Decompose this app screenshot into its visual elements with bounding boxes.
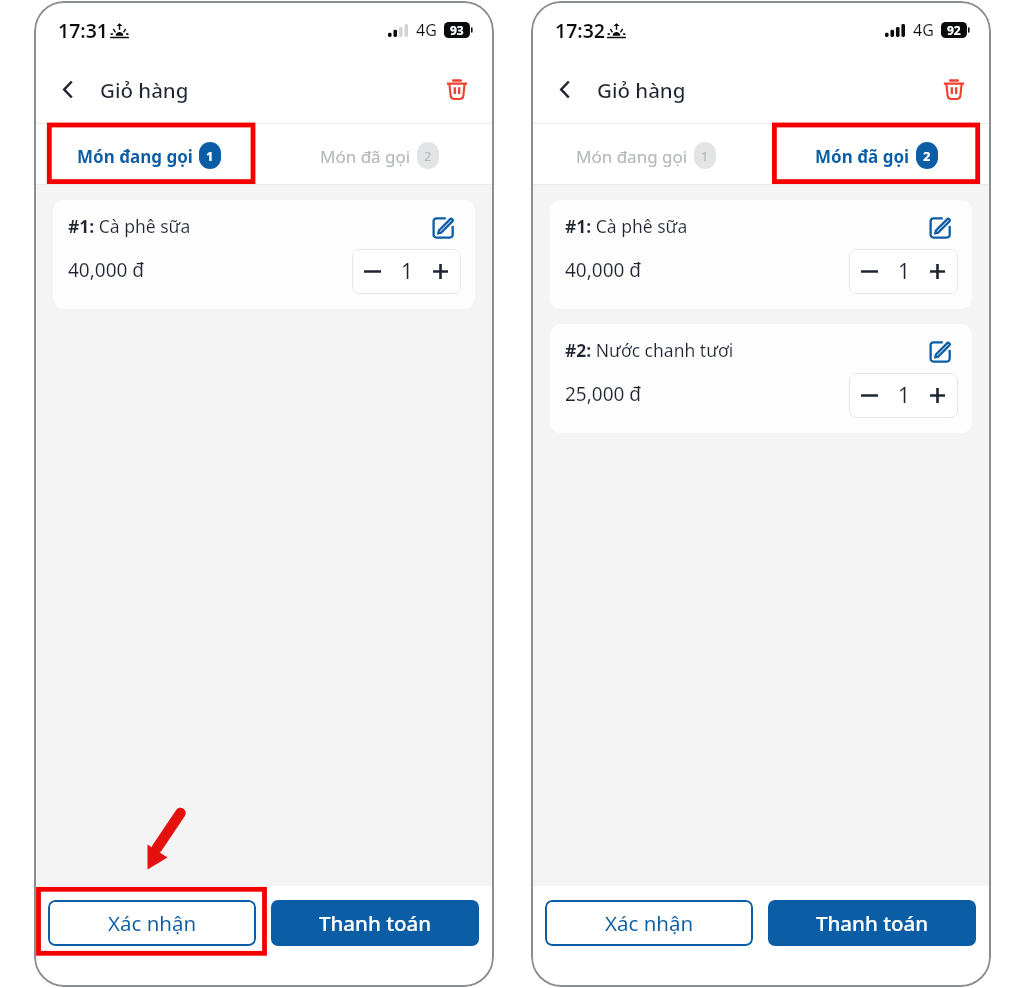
staticText: Món đang gọi — [576, 145, 688, 168]
staticText: #2: Nước chanh tươi — [565, 338, 734, 362]
staticText: 4G — [416, 19, 437, 41]
button[interactable]: Món đã gọi — [761, 124, 991, 184]
staticText: 1 — [701, 147, 709, 165]
staticText: 17:32 — [555, 17, 605, 44]
staticText: Thanh toán — [816, 909, 929, 937]
staticText: 2 — [424, 147, 432, 165]
button[interactable]: Edit — [430, 214, 456, 240]
button[interactable]: Delete all — [438, 70, 476, 108]
button[interactable]: Decrease quantity — [849, 249, 886, 294]
button[interactable]: Xác nhận — [545, 900, 753, 946]
button[interactable]: Edit — [927, 338, 953, 364]
button[interactable]: Decrease quantity — [352, 249, 389, 294]
button[interactable]: Xác nhận — [48, 900, 256, 946]
staticText: 1 — [206, 147, 214, 165]
button[interactable]: Món đang gọi — [34, 124, 264, 184]
staticText: Món đã gọi — [815, 145, 910, 168]
button[interactable]: Back — [547, 72, 585, 110]
button[interactable]: Increase quantity — [922, 249, 958, 294]
staticText: Món đang gọi — [77, 145, 193, 168]
button[interactable]: Back — [50, 72, 88, 110]
staticText: 25,000 đ — [565, 381, 642, 407]
button[interactable]: #1: Cà phê sữa — [550, 200, 972, 309]
button[interactable]: Edit — [927, 214, 953, 240]
staticText: 92 — [947, 22, 961, 38]
staticText: Xác nhận — [605, 909, 694, 937]
staticText: 1 — [401, 257, 414, 286]
button[interactable]: #2: Nước chanh tươi — [550, 324, 972, 433]
button[interactable]: Thanh toán — [271, 900, 479, 946]
staticText: Giỏ hàng — [597, 76, 686, 104]
staticText: Món đã gọi — [320, 145, 411, 168]
staticText: 4G — [913, 19, 934, 41]
staticText: 40,000 đ — [68, 257, 145, 283]
staticText: 40,000 đ — [565, 257, 642, 283]
button[interactable]: Decrease quantity — [849, 373, 886, 418]
button[interactable]: Món đang gọi — [531, 124, 761, 184]
button[interactable]: Delete all — [935, 70, 973, 108]
button[interactable]: Món đã gọi — [264, 124, 494, 184]
staticText: 1 — [898, 257, 911, 286]
staticText: 1 — [898, 381, 911, 410]
button[interactable]: Increase quantity — [425, 249, 461, 294]
staticText: #1: Cà phê sữa — [565, 214, 688, 238]
button[interactable]: Increase quantity — [922, 373, 958, 418]
staticText: Thanh toán — [319, 909, 432, 937]
button[interactable]: #1: Cà phê sữa — [53, 200, 475, 309]
staticText: #1: Cà phê sữa — [68, 214, 191, 238]
staticText: Xác nhận — [108, 909, 197, 937]
staticText: 93 — [450, 22, 464, 38]
staticText: 17:31 — [58, 17, 108, 44]
staticText: Giỏ hàng — [100, 76, 189, 104]
button[interactable]: Thanh toán — [768, 900, 976, 946]
staticText: 2 — [923, 147, 931, 165]
